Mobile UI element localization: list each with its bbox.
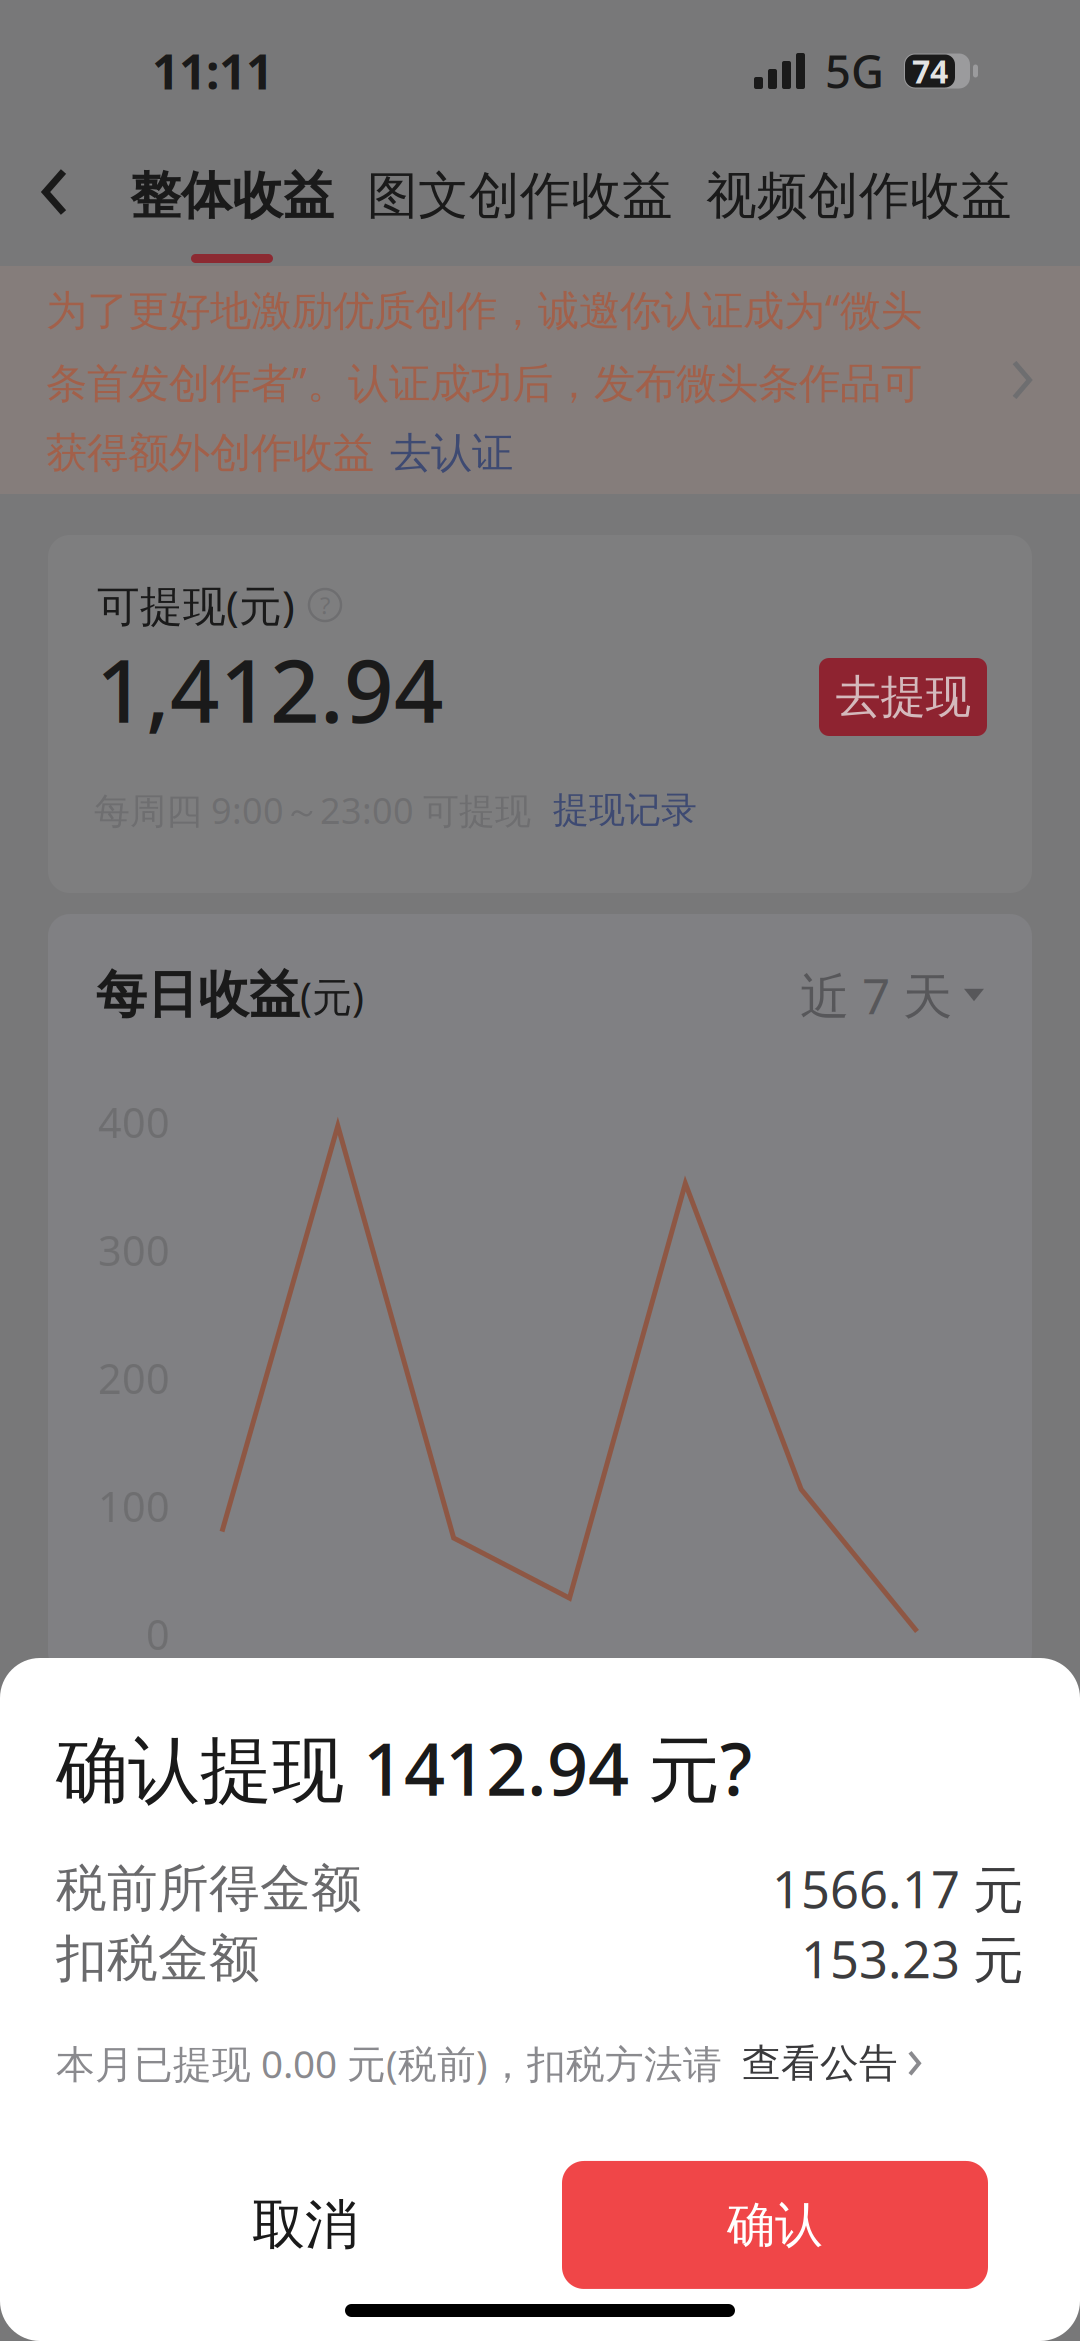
- staticText: 200: [98, 1351, 170, 1405]
- staticText: 整体收益: [130, 165, 334, 227]
- staticText: 300: [98, 1223, 170, 1277]
- staticText: 图文创作收益: [367, 165, 673, 227]
- button[interactable]: 提现记录: [553, 788, 697, 832]
- button[interactable]: 查看公告: [722, 2039, 921, 2087]
- staticText: 确认: [727, 2195, 823, 2254]
- staticText: 可提现(元): [97, 577, 295, 633]
- button[interactable]: 确认: [562, 2161, 988, 2289]
- staticText: 04/25: [173, 1650, 270, 1698]
- button[interactable]: 整体收益: [130, 142, 334, 266]
- staticText: 每日收益: [96, 964, 300, 1026]
- staticText: 去提现: [835, 669, 970, 725]
- staticText: 去认证: [390, 427, 513, 478]
- staticText: 本月已提现 0.00 元(税前)，扣税方法请: [56, 2038, 722, 2089]
- staticText: 提现记录: [553, 788, 697, 832]
- staticText: 确认提现 1412.94 元?: [56, 1720, 752, 1816]
- button[interactable]: 去提现: [819, 658, 987, 736]
- button[interactable]: 取消: [180, 2161, 430, 2289]
- button[interactable]: 近 7 天: [800, 962, 984, 1028]
- staticText: 04/28: [521, 1650, 618, 1698]
- staticText: 11:11: [152, 39, 273, 103]
- staticText: 查看公告: [742, 2039, 898, 2087]
- staticText: 04/27: [405, 1650, 502, 1698]
- staticText: 税前所得金额: [56, 1857, 362, 1920]
- staticText: 04/26: [289, 1650, 386, 1698]
- staticText: 视频创作收益: [706, 165, 1012, 227]
- staticText: 条首发创作者”。认证成功后，发布微头条作品可: [46, 355, 922, 409]
- staticText: 每周四 9:00～23:00 可提现: [94, 786, 531, 834]
- button[interactable]: 为了更好地激励优质创作，诚邀你认证成为“微头: [0, 266, 1080, 494]
- staticText: 400: [98, 1095, 170, 1149]
- staticText: 05/01: [868, 1650, 965, 1698]
- staticText: 取消: [252, 2192, 358, 2258]
- staticText: 1566.17 元: [772, 1855, 1024, 1922]
- staticText: ?: [320, 589, 330, 621]
- staticText: 153.23 元: [801, 1925, 1024, 1992]
- staticText: 扣税金额: [56, 1927, 260, 1990]
- button[interactable]: 图文创作收益: [367, 142, 673, 266]
- staticText: 04/29: [637, 1650, 734, 1698]
- staticText: 0: [146, 1607, 170, 1661]
- staticText: 获得额外创作收益: [46, 427, 374, 478]
- staticText: 为了更好地激励优质创作，诚邀你认证成为“微头: [46, 282, 922, 337]
- button[interactable]: 返回: [42, 130, 130, 278]
- staticText: (元): [300, 970, 364, 1023]
- staticText: 1,412.94: [96, 631, 444, 747]
- staticText: 5G: [825, 41, 884, 101]
- staticText: 04/30: [753, 1650, 850, 1698]
- button[interactable]: 视频创作收益: [706, 142, 1012, 266]
- staticText: 近 7 天: [800, 962, 952, 1028]
- staticText: 74: [912, 50, 948, 92]
- staticText: 100: [98, 1479, 170, 1533]
